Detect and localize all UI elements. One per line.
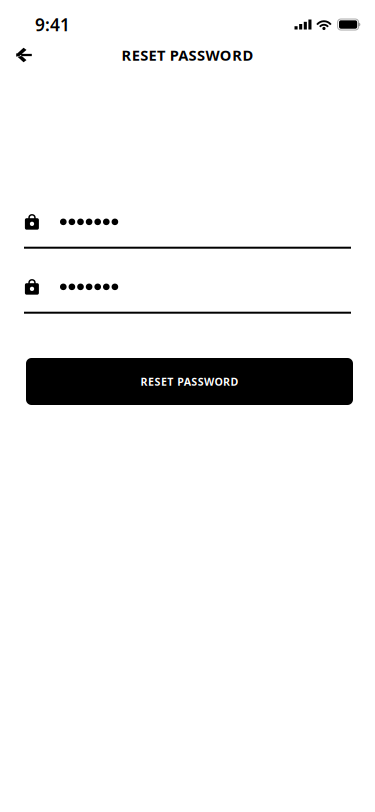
staticText: RESET PASSWORD [141,374,238,389]
button[interactable]: Back [0,36,46,73]
staticText: RESET PASSWORD [121,45,254,65]
staticText: 9:41 [35,13,70,36]
button[interactable]: RESET PASSWORD [26,358,353,405]
